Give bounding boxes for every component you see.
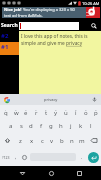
- button[interactable]: Search: [88, 20, 99, 31]
- staticText: v: [50, 137, 54, 145]
- button[interactable]: Google: [0, 94, 13, 105]
- button[interactable]: .: [77, 148, 86, 166]
- staticText: g: [49, 122, 53, 130]
- staticText: y: [54, 109, 58, 117]
- staticText: l: [90, 122, 92, 130]
- button[interactable]: #1: [0, 42, 19, 55]
- staticText: c: [41, 137, 44, 145]
- staticText: n: [70, 137, 74, 145]
- button[interactable]: #2: [0, 31, 19, 42]
- staticText: r: [35, 109, 38, 117]
- staticText: 3: [25, 108, 27, 111]
- staticText: s: [20, 122, 23, 130]
- staticText: .: [81, 154, 83, 161]
- button[interactable]: n: [67, 133, 77, 148]
- staticText: test ad from AdMob.: [4, 13, 43, 18]
- button[interactable]: I love this app of notes, this is simple…: [19, 31, 101, 94]
- staticText: 6: [55, 108, 57, 111]
- staticText: k: [79, 122, 83, 130]
- staticText: x: [30, 137, 34, 145]
- button[interactable]: Recent apps: [72, 166, 86, 180]
- staticText: e: [24, 109, 28, 117]
- button[interactable]: k: [76, 119, 86, 133]
- button[interactable]: z: [15, 133, 26, 148]
- staticText: #2: [1, 32, 9, 40]
- staticText: 10:26 AM: [82, 1, 100, 6]
- button[interactable]: privacy: [13, 94, 88, 105]
- button[interactable]: 3: [21, 105, 31, 119]
- button[interactable]: v: [47, 133, 57, 148]
- button[interactable]: g: [46, 119, 56, 133]
- staticText: w: [14, 109, 19, 117]
- staticText: h: [59, 122, 63, 130]
- button[interactable]: ,: [11, 148, 20, 166]
- staticText: z: [19, 137, 22, 145]
- staticText: Google AdMob: [86, 11, 100, 17]
- staticText: d: [29, 122, 33, 130]
- button[interactable]: Shift: [0, 133, 15, 148]
- button[interactable]: ?123: [0, 148, 11, 166]
- button[interactable]: m: [77, 133, 87, 148]
- staticText: privacy: [44, 97, 58, 102]
- staticText: Nice job!: [4, 7, 23, 12]
- staticText: j: [70, 122, 72, 130]
- button[interactable]: f: [36, 119, 46, 133]
- staticText: b: [60, 137, 64, 145]
- button[interactable]: l: [86, 119, 96, 133]
- button[interactable]: x: [26, 133, 37, 148]
- staticText: 1: [5, 108, 7, 111]
- button[interactable]: s: [16, 119, 26, 133]
- staticText: 2: [15, 108, 17, 111]
- button[interactable]: 2: [11, 105, 21, 119]
- staticText: t: [45, 109, 48, 117]
- button[interactable]: j: [66, 119, 76, 133]
- staticText: I love this app of notes, this is simple…: [21, 33, 100, 47]
- staticText: Search: [1, 22, 18, 29]
- staticText: 7: [65, 108, 67, 111]
- button[interactable]: Backspace: [87, 133, 101, 148]
- staticText: ?123: [2, 155, 10, 160]
- button[interactable]: a: [5, 119, 16, 133]
- staticText: a: [9, 122, 13, 130]
- button[interactable]: d: [26, 119, 36, 133]
- staticText: You're displaying a 320 x 50: [23, 7, 75, 12]
- staticText: f: [40, 122, 43, 130]
- button[interactable]: 1: [0, 105, 11, 119]
- button[interactable]: 8: [71, 105, 81, 119]
- staticText: q: [4, 109, 8, 117]
- staticText: m: [79, 137, 85, 145]
- button[interactable]: Emoji: [20, 148, 29, 166]
- staticText: 4: [35, 108, 37, 111]
- staticText: u: [64, 109, 68, 117]
- staticText: p: [94, 109, 98, 117]
- staticText: #1: [1, 43, 9, 51]
- button[interactable]: b: [57, 133, 67, 148]
- button[interactable]: 6: [51, 105, 61, 119]
- button[interactable]: h: [56, 119, 66, 133]
- staticText: o: [84, 109, 88, 117]
- staticText: 0: [95, 108, 97, 111]
- button[interactable]: 9: [81, 105, 91, 119]
- staticText: i: [75, 109, 77, 117]
- button[interactable]: Back: [15, 166, 29, 180]
- button[interactable]: Enter: [86, 148, 101, 166]
- staticText: 5: [45, 108, 47, 111]
- button[interactable]: 5: [41, 105, 51, 119]
- staticText: 9: [85, 108, 87, 111]
- button[interactable]: 0: [91, 105, 101, 119]
- staticText: 8: [75, 108, 77, 111]
- button[interactable]: Voice input: [88, 94, 101, 105]
- button[interactable]: [19, 22, 79, 30]
- staticText: ,: [15, 154, 17, 161]
- button[interactable]: Home: [44, 166, 58, 180]
- button[interactable]: 7: [61, 105, 71, 119]
- button[interactable]: 4: [31, 105, 41, 119]
- button[interactable]: c: [37, 133, 47, 148]
